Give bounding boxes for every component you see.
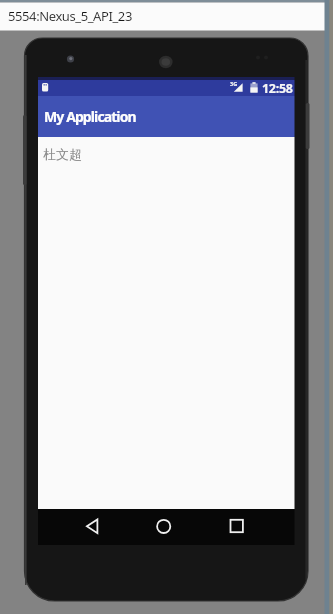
button[interactable] (143, 509, 185, 545)
staticText: 杜文超 (43, 146, 82, 162)
staticText: 12:58 (262, 80, 293, 96)
staticText: 3G (230, 80, 238, 87)
staticText: 5554:Nexus_5_API_23 (8, 7, 132, 25)
button[interactable] (216, 509, 258, 545)
button[interactable] (72, 509, 114, 545)
staticText: My Application (44, 107, 136, 126)
